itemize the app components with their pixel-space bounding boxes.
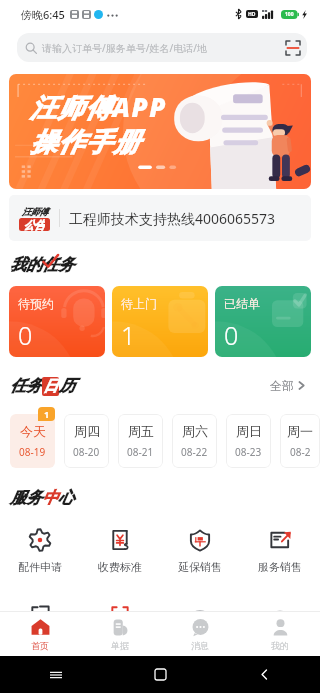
- other: Back: [259, 669, 270, 680]
- button[interactable]: 请输入订单号/服务单号/姓名/电话/地: [17, 33, 307, 62]
- staticText: 日: [43, 377, 58, 396]
- button[interactable]: 今天: [10, 414, 55, 468]
- staticText: 0: [18, 318, 33, 352]
- staticText: 傍晚6:45: [21, 7, 65, 22]
- button[interactable]: [160, 594, 240, 618]
- staticText: 请输入订单号/服务单号/姓名/电话/地: [42, 41, 207, 55]
- other: Home: [155, 669, 166, 680]
- button[interactable]: 收费标准: [80, 528, 160, 574]
- staticText: 公告: [24, 218, 45, 231]
- other: Recents: [50, 669, 62, 681]
- staticText: 08-22: [181, 445, 208, 459]
- staticText: 全部: [270, 378, 294, 393]
- staticText: 1: [121, 318, 136, 352]
- staticText: HD: [248, 11, 256, 18]
- staticText: 我的: [271, 640, 289, 651]
- button[interactable]: 周日: [226, 414, 271, 468]
- staticText: 08-2: [290, 445, 311, 459]
- button[interactable]: 周五: [118, 414, 163, 468]
- staticText: 0: [224, 318, 239, 352]
- button[interactable]: 待上门: [112, 286, 208, 357]
- staticText: 服务销售: [258, 560, 302, 574]
- button[interactable]: 已结单: [215, 286, 311, 357]
- button[interactable]: 消息: [160, 612, 240, 656]
- staticText: 心: [58, 488, 74, 508]
- staticText: 今天: [20, 423, 46, 439]
- button[interactable]: 周四: [64, 414, 109, 468]
- button[interactable]: 汪师傅: [9, 195, 311, 241]
- button[interactable]: [240, 594, 320, 618]
- staticText: 100: [285, 11, 294, 18]
- staticText: 周四: [74, 423, 100, 439]
- staticText: 首页: [31, 640, 49, 651]
- staticText: 08-20: [73, 445, 100, 459]
- staticText: 周日: [236, 423, 262, 439]
- button[interactable]: 周一: [280, 414, 320, 468]
- staticText: 待上门: [121, 296, 157, 311]
- staticText: 待预约: [18, 296, 54, 311]
- button[interactable]: 单据: [80, 612, 160, 656]
- staticText: 中: [42, 488, 58, 508]
- button[interactable]: 延保销售: [160, 528, 240, 574]
- staticText: 周五: [128, 423, 154, 439]
- staticText: 08-23: [235, 445, 262, 459]
- button[interactable]: 汪师傅APP: [9, 74, 311, 189]
- staticText: 单据: [111, 640, 129, 651]
- staticText: 历: [59, 376, 75, 396]
- button[interactable]: 待预约: [9, 286, 105, 357]
- staticText: 已结单: [224, 296, 260, 311]
- staticText: 延保销售: [178, 560, 222, 574]
- button[interactable]: 配件申请: [0, 528, 80, 574]
- button[interactable]: [80, 594, 160, 618]
- staticText: 任务: [10, 376, 42, 396]
- button[interactable]: 全部: [266, 374, 309, 397]
- staticText: 消息: [191, 640, 209, 651]
- button[interactable]: 服务销售: [240, 528, 320, 574]
- button[interactable]: 周六: [172, 414, 217, 468]
- staticText: 工程师技术支持热线4006065573: [69, 209, 276, 228]
- staticText: 收费标准: [98, 560, 142, 574]
- staticText: 08-19: [19, 445, 46, 459]
- staticText: 汪师傅APP: [30, 89, 167, 125]
- staticText: 周六: [182, 423, 208, 439]
- button[interactable]: [0, 594, 80, 618]
- staticText: 汪师傅: [22, 206, 48, 217]
- staticText: 我的任务: [10, 255, 74, 275]
- staticText: 08-21: [127, 445, 154, 459]
- other: 扫一扫: [286, 41, 300, 55]
- staticText: 服务: [10, 488, 42, 508]
- button[interactable]: 首页: [0, 612, 80, 656]
- staticText: 配件申请: [18, 560, 62, 574]
- staticText: 1: [44, 408, 50, 420]
- staticText: 操作手册: [30, 126, 140, 159]
- button[interactable]: 我的: [240, 612, 320, 656]
- staticText: 周一: [287, 423, 313, 439]
